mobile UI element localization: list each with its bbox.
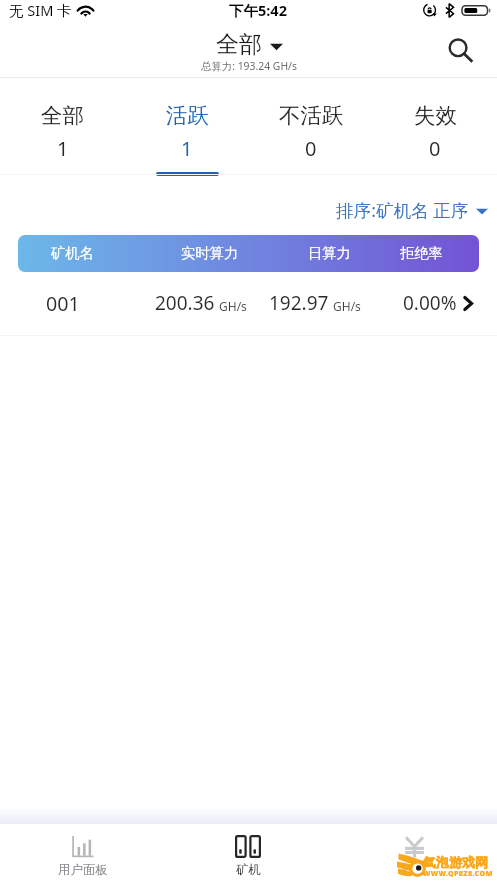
staticText: 200.36	[155, 290, 215, 316]
button[interactable]: 排序:矿机名 正序	[322, 183, 497, 227]
staticText: GH/s	[219, 298, 247, 314]
button[interactable]: 用户面板	[0, 824, 165, 878]
staticText: 0.00%	[403, 290, 457, 316]
button[interactable]: 收益	[331, 824, 497, 878]
button[interactable]: 不活跃	[249, 78, 373, 174]
staticText: 矿机	[236, 862, 261, 878]
button[interactable]: 全部	[0, 78, 125, 174]
button[interactable]: 失效	[373, 78, 497, 174]
button[interactable]: 001	[0, 272, 497, 335]
staticText: 1	[57, 135, 69, 162]
staticText: 下午5:42	[229, 0, 287, 20]
staticText: 失效	[414, 102, 457, 129]
staticText: 0	[305, 135, 317, 162]
staticText: 拒绝率	[400, 244, 443, 262]
staticText: 实时算力	[181, 244, 239, 262]
staticText: 0	[429, 135, 441, 162]
staticText: 活跃	[166, 102, 209, 129]
staticText: 192.97	[269, 290, 329, 316]
staticText: 不活跃	[279, 102, 344, 129]
staticText: 收益	[402, 862, 427, 878]
staticText: WWW.QP8Z8.COM	[423, 868, 493, 878]
staticText: 总算力: 193.24 GH/s	[201, 59, 297, 73]
staticText: 无 SIM 卡	[9, 0, 72, 20]
button[interactable]: 活跃	[125, 78, 249, 174]
staticText: 气泡游戏网	[423, 854, 488, 870]
staticText: 日算力	[308, 244, 351, 262]
button[interactable]: 矿机	[165, 824, 331, 878]
staticText: GH/s	[333, 298, 361, 314]
staticText: 排序:矿机名 正序	[336, 198, 469, 222]
button[interactable]: 全部	[210, 30, 289, 59]
staticText: 全部	[41, 102, 84, 129]
staticText: 用户面板	[58, 862, 108, 878]
staticText: 矿机名	[51, 244, 94, 262]
staticText: 1	[181, 135, 193, 162]
button[interactable]: Search	[439, 29, 481, 71]
staticText: 全部	[216, 30, 262, 59]
staticText: 001	[46, 290, 80, 317]
